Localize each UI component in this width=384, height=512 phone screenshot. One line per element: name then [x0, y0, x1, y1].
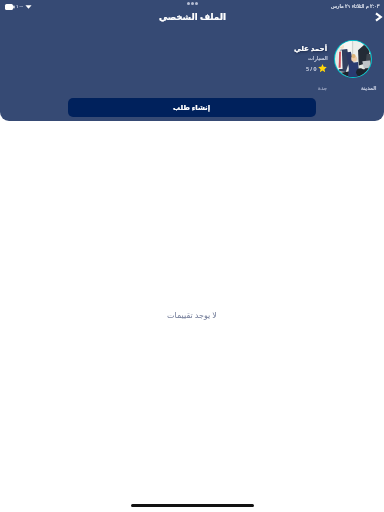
- staticText: أحمد علي: [294, 43, 328, 53]
- button[interactable]: Back: [367, 6, 384, 28]
- staticText: ١٠-: [16, 3, 23, 10]
- staticText: ٢:٠٣ م الثلاثاء ٢١ مارس: [331, 3, 380, 10]
- staticText: المدينة: [361, 85, 377, 91]
- staticText: 5 / 0: [306, 65, 317, 72]
- button[interactable]: إنشاء طلب: [68, 98, 316, 117]
- staticText: الملف الشخصي: [159, 11, 226, 23]
- staticText: إنشاء طلب: [173, 103, 211, 113]
- button[interactable]: أحمد علي: [294, 40, 372, 78]
- staticText: السيارات: [308, 55, 328, 61]
- button[interactable]: جدة: [318, 85, 377, 91]
- staticText: لا يوجد تقييمات: [167, 309, 217, 320]
- staticText: جدة: [318, 85, 328, 91]
